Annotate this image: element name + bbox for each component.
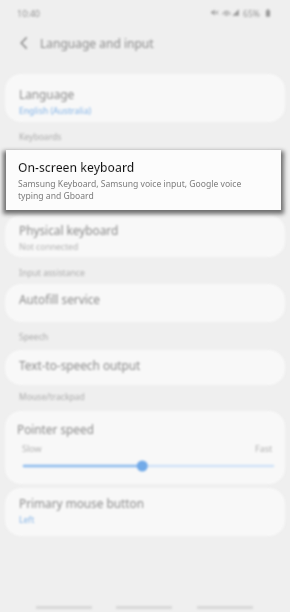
button[interactable]: Text-to-speech output xyxy=(5,350,285,385)
staticText: Fast xyxy=(255,442,273,454)
button[interactable]: Recents xyxy=(32,592,96,612)
staticText: Samsung Keyboard, Samsung voice xyxy=(19,177,163,189)
staticText: Keyboards xyxy=(19,131,62,143)
button[interactable]: Pointer speed xyxy=(5,411,285,484)
staticText: 10:40 xyxy=(17,7,41,19)
staticText: Language and input xyxy=(40,35,154,51)
button[interactable]: Autofill service xyxy=(5,284,285,322)
staticText: On-screen keyboard xyxy=(18,159,135,175)
staticText: 65% xyxy=(243,8,260,20)
button[interactable]: Back xyxy=(193,592,257,612)
staticText: Not connected xyxy=(19,241,79,253)
button[interactable]: On-screen keyboard xyxy=(6,150,281,210)
button[interactable]: Primary mouse button xyxy=(5,488,285,536)
staticText: Speech xyxy=(19,331,49,343)
button[interactable]: On-screen keyboard xyxy=(5,150,285,212)
staticText: Mouse/trackpad xyxy=(19,391,85,403)
staticText: On-screen keyboard xyxy=(19,158,131,174)
staticText: Physical keyboard xyxy=(19,222,119,238)
staticText: Samsung Keyboard, Samsung voice input, G… xyxy=(18,178,249,201)
staticText: Language xyxy=(19,86,75,102)
staticText: Autofill service xyxy=(19,291,101,307)
staticText: Slow xyxy=(22,442,42,454)
button[interactable]: Physical keyboard xyxy=(5,215,285,257)
staticText: English (Australia) xyxy=(19,105,92,117)
staticText: Left xyxy=(19,514,35,526)
button[interactable]: Back xyxy=(12,31,36,55)
staticText: Primary mouse button xyxy=(19,495,144,511)
button[interactable]: Home xyxy=(112,592,176,612)
button[interactable]: Language xyxy=(5,74,285,122)
staticText: Input assistance xyxy=(19,267,85,279)
staticText: Text-to-speech output xyxy=(19,357,141,373)
staticText: Pointer speed xyxy=(17,421,94,437)
